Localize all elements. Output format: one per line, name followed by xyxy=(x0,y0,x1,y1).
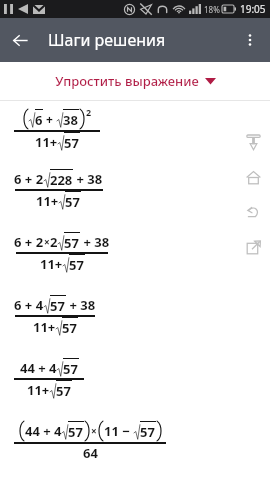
staticText: 44 + 4 xyxy=(25,422,62,440)
staticText: 2 xyxy=(50,233,58,251)
staticText: 57 xyxy=(56,382,71,400)
staticText: 57 xyxy=(140,423,155,441)
staticText: Шаги решения xyxy=(48,29,166,51)
staticText: 44 + 4 xyxy=(20,359,57,377)
button[interactable]: 6 + 2 xyxy=(0,221,236,284)
button[interactable]: Undo xyxy=(238,197,268,227)
staticText: 57 xyxy=(64,134,79,152)
button[interactable]: Back xyxy=(0,20,40,60)
staticText: 11+ xyxy=(35,133,58,151)
staticText: + 38 xyxy=(73,170,103,188)
staticText: 11+ xyxy=(36,192,59,210)
staticText: 11+ xyxy=(27,381,50,399)
button[interactable]: 44 + 4 xyxy=(0,347,236,410)
staticText: 6 + 2 xyxy=(14,170,44,188)
staticText: 57 xyxy=(64,234,79,252)
staticText: 57 xyxy=(62,319,77,337)
button[interactable]: 6 xyxy=(0,101,236,159)
staticText: 6 xyxy=(35,111,43,129)
staticText: 228 xyxy=(50,171,73,189)
staticText: + 38 xyxy=(80,233,110,251)
staticText: 6 + 2 xyxy=(14,233,44,251)
staticText: 19:05 xyxy=(240,2,266,16)
staticText: Упростить выражение xyxy=(55,72,199,90)
staticText: + 38 xyxy=(66,296,96,314)
button[interactable]: More options xyxy=(230,20,270,60)
button[interactable]: 44 + 4 xyxy=(0,410,236,472)
button[interactable]: 6 + 2 xyxy=(0,159,236,221)
staticText: × xyxy=(91,424,97,438)
staticText: 57 xyxy=(65,193,80,211)
button[interactable]: Share xyxy=(238,232,268,262)
staticText: 18% xyxy=(204,4,220,15)
staticText: 11 − xyxy=(104,422,134,440)
staticText: 57 xyxy=(63,360,78,378)
staticText: 2 xyxy=(86,106,92,118)
staticText: 11+ xyxy=(40,255,63,273)
staticText: 6 + 4 xyxy=(14,296,44,314)
button[interactable]: Home xyxy=(238,162,268,192)
staticText: + xyxy=(43,111,57,127)
staticText: 64 xyxy=(83,444,98,462)
staticText: 11+ xyxy=(33,318,56,336)
staticText: 57 xyxy=(69,256,84,274)
staticText: × xyxy=(44,235,50,249)
button[interactable]: Collapse xyxy=(238,127,268,157)
staticText: 57 xyxy=(50,297,65,315)
button[interactable]: 6 + 4 xyxy=(0,284,236,347)
staticText: 38 xyxy=(63,111,78,129)
staticText: 57 xyxy=(68,423,83,441)
button[interactable]: Упростить выражение xyxy=(0,62,270,100)
